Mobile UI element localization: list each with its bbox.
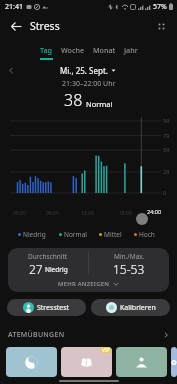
button[interactable]: Previous day	[4, 63, 18, 77]
staticText: 18:00	[119, 210, 132, 217]
staticText: Tag	[40, 45, 53, 55]
button[interactable]	[171, 347, 177, 377]
button[interactable]: Scroll	[136, 213, 148, 225]
button[interactable]: Back	[6, 16, 26, 36]
staticText: Stresstest	[37, 303, 70, 313]
button[interactable]: MEHR ANZEIGEN	[8, 276, 169, 292]
staticText: Niedrig	[23, 230, 46, 239]
staticText: Woche	[61, 45, 85, 55]
staticText: 99	[163, 117, 170, 124]
button[interactable]: Jahr	[124, 45, 138, 58]
staticText: 29	[163, 168, 170, 175]
button[interactable]: Tag	[40, 45, 53, 60]
staticText: Hoch	[139, 230, 155, 239]
staticText: 38	[64, 89, 83, 111]
staticText: Normal	[86, 99, 113, 109]
staticText: MEHR ANZEIGEN	[58, 280, 110, 288]
staticText: 24:00	[147, 208, 162, 215]
staticText: Monat	[93, 45, 116, 55]
staticText: ATEMÜBUNGEN	[8, 330, 65, 340]
staticText: 21:30–22:00 Uhr	[62, 79, 116, 89]
staticText: Mi., 25. Sept.	[60, 65, 108, 76]
button[interactable]: ATEMÜBUNGEN	[8, 328, 169, 342]
button[interactable]: VIP	[61, 347, 112, 377]
staticText: Min./Max.	[114, 252, 145, 261]
staticText: 27	[29, 261, 43, 276]
staticText: 59	[163, 146, 170, 153]
staticText: 21:41	[5, 2, 23, 12]
button[interactable]: More options	[151, 16, 171, 36]
button[interactable]: Stresstest	[7, 299, 86, 316]
button[interactable]: Kalibrieren	[91, 299, 170, 316]
staticText: Niedrig	[45, 265, 68, 274]
button[interactable]: Woche	[61, 45, 85, 58]
staticText: Kalibrieren	[120, 303, 156, 313]
staticText: Stress	[30, 19, 60, 33]
staticText: Normal	[64, 230, 87, 239]
staticText: 0	[163, 189, 167, 196]
button[interactable]: Mi., 25. Sept.	[60, 65, 116, 76]
staticText: 12:00	[81, 210, 94, 217]
staticText: 79	[163, 132, 170, 139]
staticText: Jahr	[124, 45, 138, 55]
button[interactable]: Monat	[93, 45, 116, 58]
staticText: Durchschnitt	[28, 252, 68, 261]
staticText: 00:00	[13, 210, 26, 217]
staticText: 06:00	[46, 210, 59, 217]
button[interactable]	[116, 347, 167, 377]
staticText: Mittel	[104, 230, 122, 239]
staticText: 57%	[153, 2, 167, 12]
staticText: 15-53	[113, 261, 145, 276]
staticText: VIP	[102, 347, 110, 353]
button[interactable]	[6, 347, 57, 377]
